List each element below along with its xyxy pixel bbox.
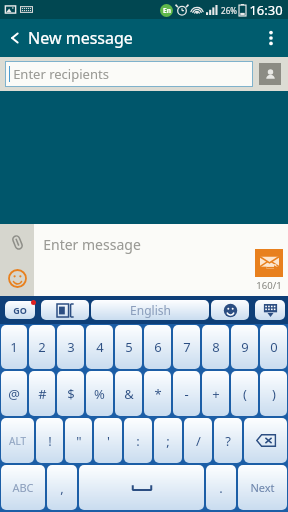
button[interactable]: One-handed keyboard — [41, 300, 89, 320]
button[interactable]: 9 — [231, 325, 258, 369]
staticText: , — [60, 479, 64, 497]
button[interactable]: 0 — [260, 325, 287, 369]
staticText: : — [136, 432, 140, 450]
button[interactable]: ' — [94, 418, 122, 463]
button[interactable]: 2 — [29, 325, 55, 369]
staticText: & — [124, 385, 134, 403]
staticText: @ — [8, 385, 20, 403]
button[interactable]: ( — [231, 371, 258, 416]
button[interactable]: & — [115, 371, 142, 416]
staticText: . — [219, 479, 223, 497]
staticText: 7 — [183, 338, 191, 356]
staticText: ABC — [12, 480, 34, 495]
staticText: 160/1 — [256, 279, 282, 292]
button[interactable]: Backspace — [244, 418, 287, 463]
button[interactable]: 4 — [86, 325, 113, 369]
button[interactable]: Enter recipients — [5, 61, 253, 87]
button[interactable]: 5 — [115, 325, 142, 369]
staticText: English — [130, 302, 171, 318]
button[interactable]: @ — [1, 371, 27, 416]
button[interactable]: Back — [0, 23, 30, 53]
button[interactable]: . — [206, 465, 236, 510]
staticText: + — [212, 385, 220, 403]
staticText: 6 — [154, 338, 162, 356]
staticText: 0 — [270, 338, 278, 356]
button[interactable]: More options — [254, 21, 288, 55]
button[interactable]: Add recipient from contacts — [259, 63, 281, 85]
button[interactable]: " — [65, 418, 92, 463]
staticText: Enter recipients — [13, 65, 109, 83]
button[interactable]: 3 — [57, 325, 84, 369]
staticText: 1 — [10, 338, 18, 356]
staticText: 5 — [125, 338, 133, 356]
button[interactable]: ; — [154, 418, 182, 463]
staticText: ALT — [9, 434, 26, 448]
staticText: Enter message — [43, 235, 141, 254]
staticText: 3 — [67, 338, 75, 356]
staticText: / — [196, 432, 201, 450]
staticText: % — [94, 385, 105, 403]
button[interactable]: # — [29, 371, 55, 416]
staticText: ) — [272, 385, 276, 403]
button[interactable]: ? — [214, 418, 242, 463]
button[interactable]: ! — [36, 418, 63, 463]
staticText: GO — [13, 304, 27, 316]
staticText: " — [76, 432, 82, 450]
button[interactable]: / — [184, 418, 212, 463]
button[interactable]: 1 — [1, 325, 27, 369]
staticText: Next — [250, 480, 275, 495]
staticText: 26% — [221, 5, 237, 16]
button[interactable]: + — [202, 371, 229, 416]
button[interactable]: Insert emoticon — [0, 260, 34, 296]
button[interactable]: * — [144, 371, 171, 416]
button[interactable]: $ — [57, 371, 84, 416]
button[interactable]: English — [91, 300, 209, 320]
staticText: 4 — [96, 338, 104, 356]
button[interactable]: Attach — [0, 224, 34, 260]
staticText: ; — [166, 432, 170, 450]
button[interactable]: Space — [79, 465, 204, 510]
staticText: ( — [243, 385, 247, 403]
button[interactable]: Send message — [255, 249, 283, 277]
staticText: # — [38, 385, 47, 403]
button[interactable]: GO — [5, 301, 35, 319]
staticText: $ — [67, 385, 75, 403]
button[interactable]: 6 — [144, 325, 171, 369]
button[interactable]: Hide keyboard — [255, 300, 285, 320]
button[interactable]: 8 — [202, 325, 229, 369]
staticText: New message — [28, 27, 133, 49]
staticText: 8 — [212, 338, 220, 356]
button[interactable]: ALT — [1, 418, 34, 463]
staticText: - — [184, 385, 189, 403]
staticText: 16:30 — [249, 1, 283, 19]
staticText: En — [163, 6, 171, 15]
button[interactable]: Next — [238, 465, 287, 510]
staticText: 9 — [241, 338, 249, 356]
button[interactable]: ABC — [1, 465, 45, 510]
staticText: ' — [107, 432, 110, 450]
button[interactable]: % — [86, 371, 113, 416]
button[interactable]: 7 — [173, 325, 200, 369]
staticText: ? — [225, 432, 231, 450]
staticText: * — [154, 385, 162, 403]
button[interactable]: : — [124, 418, 152, 463]
staticText: ! — [48, 432, 52, 450]
button[interactable]: ) — [260, 371, 287, 416]
button[interactable]: Emoji — [211, 300, 249, 320]
button[interactable]: , — [47, 465, 77, 510]
button[interactable]: - — [173, 371, 200, 416]
staticText: 2 — [38, 338, 46, 356]
